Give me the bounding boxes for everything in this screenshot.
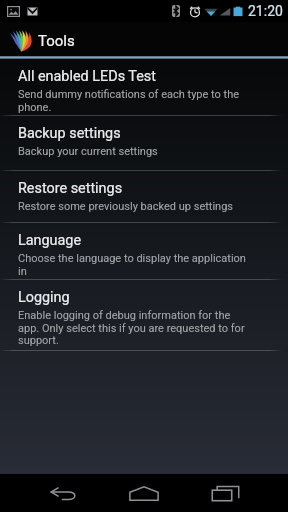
staticText: Send dummy notifications of each type to… bbox=[18, 88, 240, 114]
button[interactable]: Back bbox=[23, 474, 103, 512]
staticText: Language bbox=[18, 232, 82, 249]
button[interactable]: Language bbox=[0, 223, 288, 279]
staticText: All enabled LEDs Test bbox=[18, 68, 157, 85]
staticText: Tools bbox=[38, 32, 75, 50]
button[interactable]: Home bbox=[103, 474, 185, 512]
button[interactable]: Restore settings bbox=[0, 171, 288, 222]
staticText: Backup settings bbox=[18, 125, 121, 142]
staticText: Restore some previously backed up settin… bbox=[18, 200, 234, 213]
staticText: Backup your current settings bbox=[18, 145, 158, 158]
staticText: Logging bbox=[18, 289, 70, 306]
button[interactable]: Backup settings bbox=[0, 116, 288, 170]
staticText: 21:20 bbox=[248, 3, 283, 19]
staticText: Choose the language to display the appli… bbox=[18, 252, 246, 278]
button[interactable]: Recent apps bbox=[185, 474, 265, 512]
button[interactable]: Logging bbox=[0, 280, 288, 350]
staticText: Restore settings bbox=[18, 180, 123, 197]
button[interactable]: Tools bbox=[0, 22, 288, 59]
button[interactable]: All enabled LEDs Test bbox=[0, 59, 288, 115]
staticText: Enable logging of debug information for … bbox=[18, 309, 245, 347]
